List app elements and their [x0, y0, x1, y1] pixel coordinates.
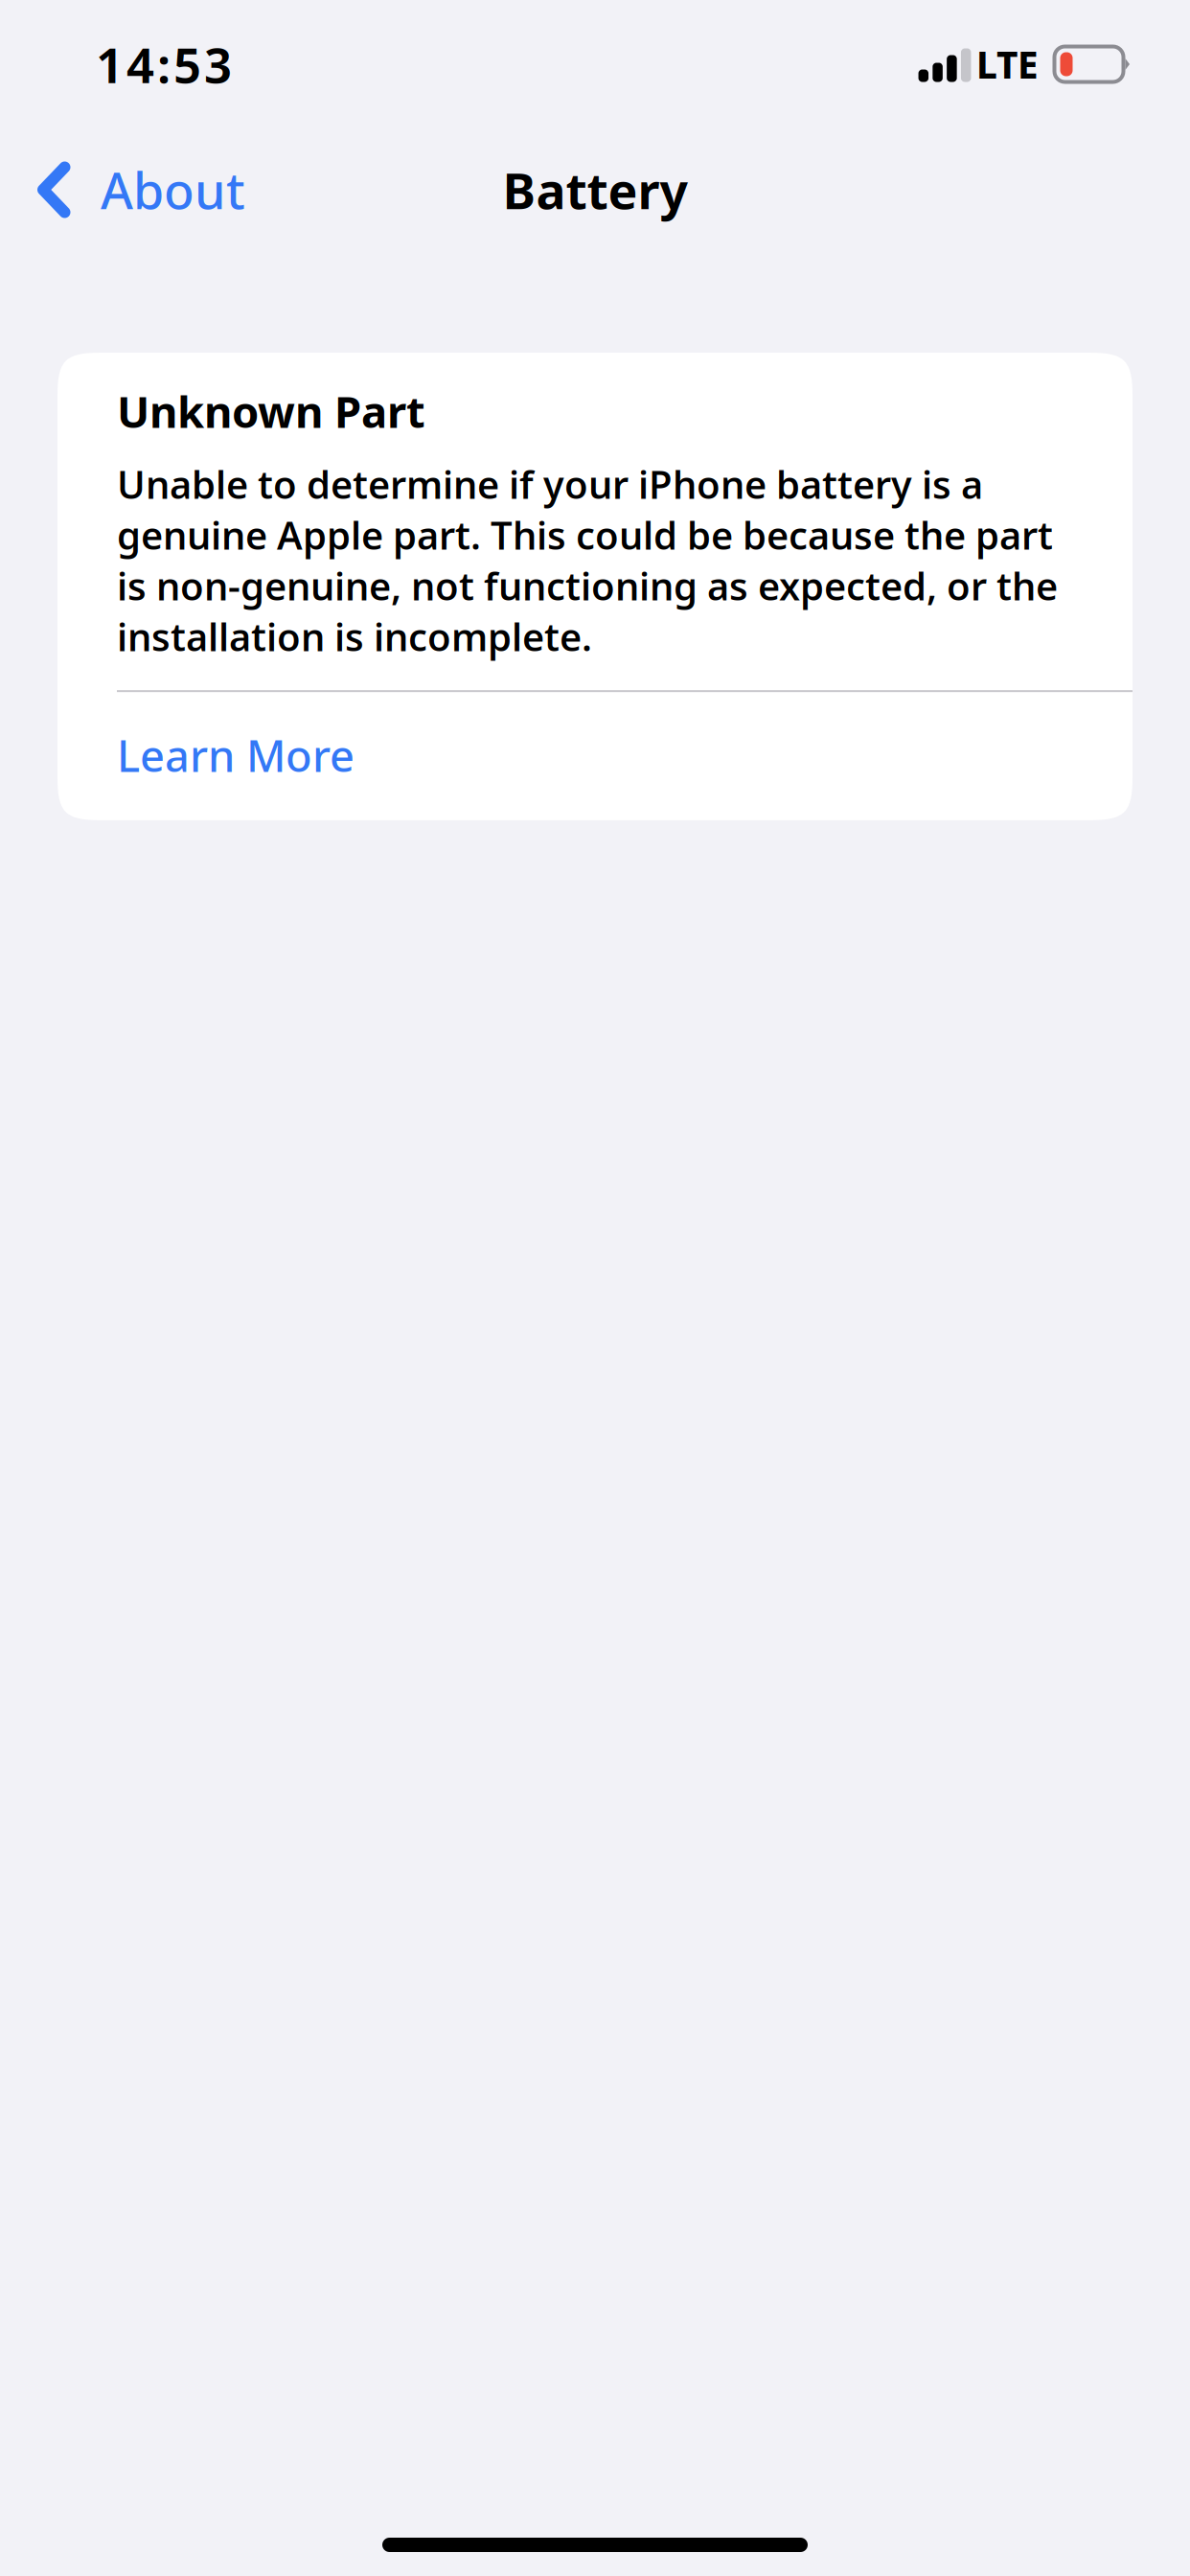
staticText: 14:53: [96, 31, 232, 97]
staticText: Battery: [503, 156, 687, 224]
staticText: Unable to determine if your iPhone batte…: [117, 458, 1058, 662]
button[interactable]: Learn More: [117, 692, 1133, 820]
staticText: Unknown Part: [117, 381, 425, 441]
staticText: Learn More: [117, 726, 355, 785]
staticText: LTE: [976, 39, 1039, 90]
staticText: About: [101, 156, 245, 224]
button[interactable]: Back to About: [0, 128, 264, 251]
